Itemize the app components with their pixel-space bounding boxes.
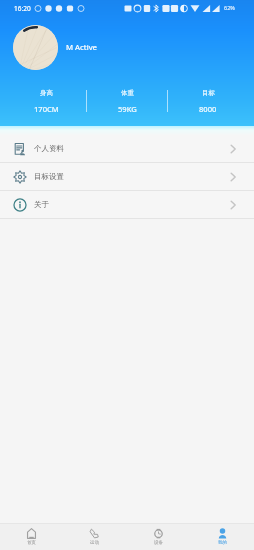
staticText: 170CM [34, 104, 59, 114]
staticText: 首页 [27, 540, 36, 546]
staticText: M Active [66, 42, 98, 53]
staticText: 我的 [218, 540, 227, 546]
button[interactable]: 首页 [0, 524, 63, 546]
button[interactable]: 设备 [126, 524, 190, 546]
button[interactable]: 我的 [190, 524, 254, 546]
staticText: 运动 [90, 540, 99, 546]
staticText: 关于 [34, 200, 49, 209]
staticText: 8000 [199, 104, 217, 114]
staticText: 个人资料 [34, 144, 64, 153]
staticText: 62% [224, 4, 235, 11]
button[interactable]: 个人资料 [0, 135, 254, 162]
staticText: 身高 [40, 89, 53, 97]
staticText: 16:20 [14, 4, 31, 13]
button[interactable]: 运动 [63, 524, 126, 546]
staticText: 目标设置 [34, 172, 64, 181]
staticText: 体重 [121, 89, 134, 97]
staticText: 设备 [154, 540, 163, 546]
staticText: 59KG [118, 104, 137, 114]
button[interactable]: 关于 [0, 191, 254, 218]
button[interactable]: 目标设置 [0, 163, 254, 190]
button[interactable]: Profile photo [13, 25, 58, 70]
staticText: 目标 [202, 89, 215, 97]
